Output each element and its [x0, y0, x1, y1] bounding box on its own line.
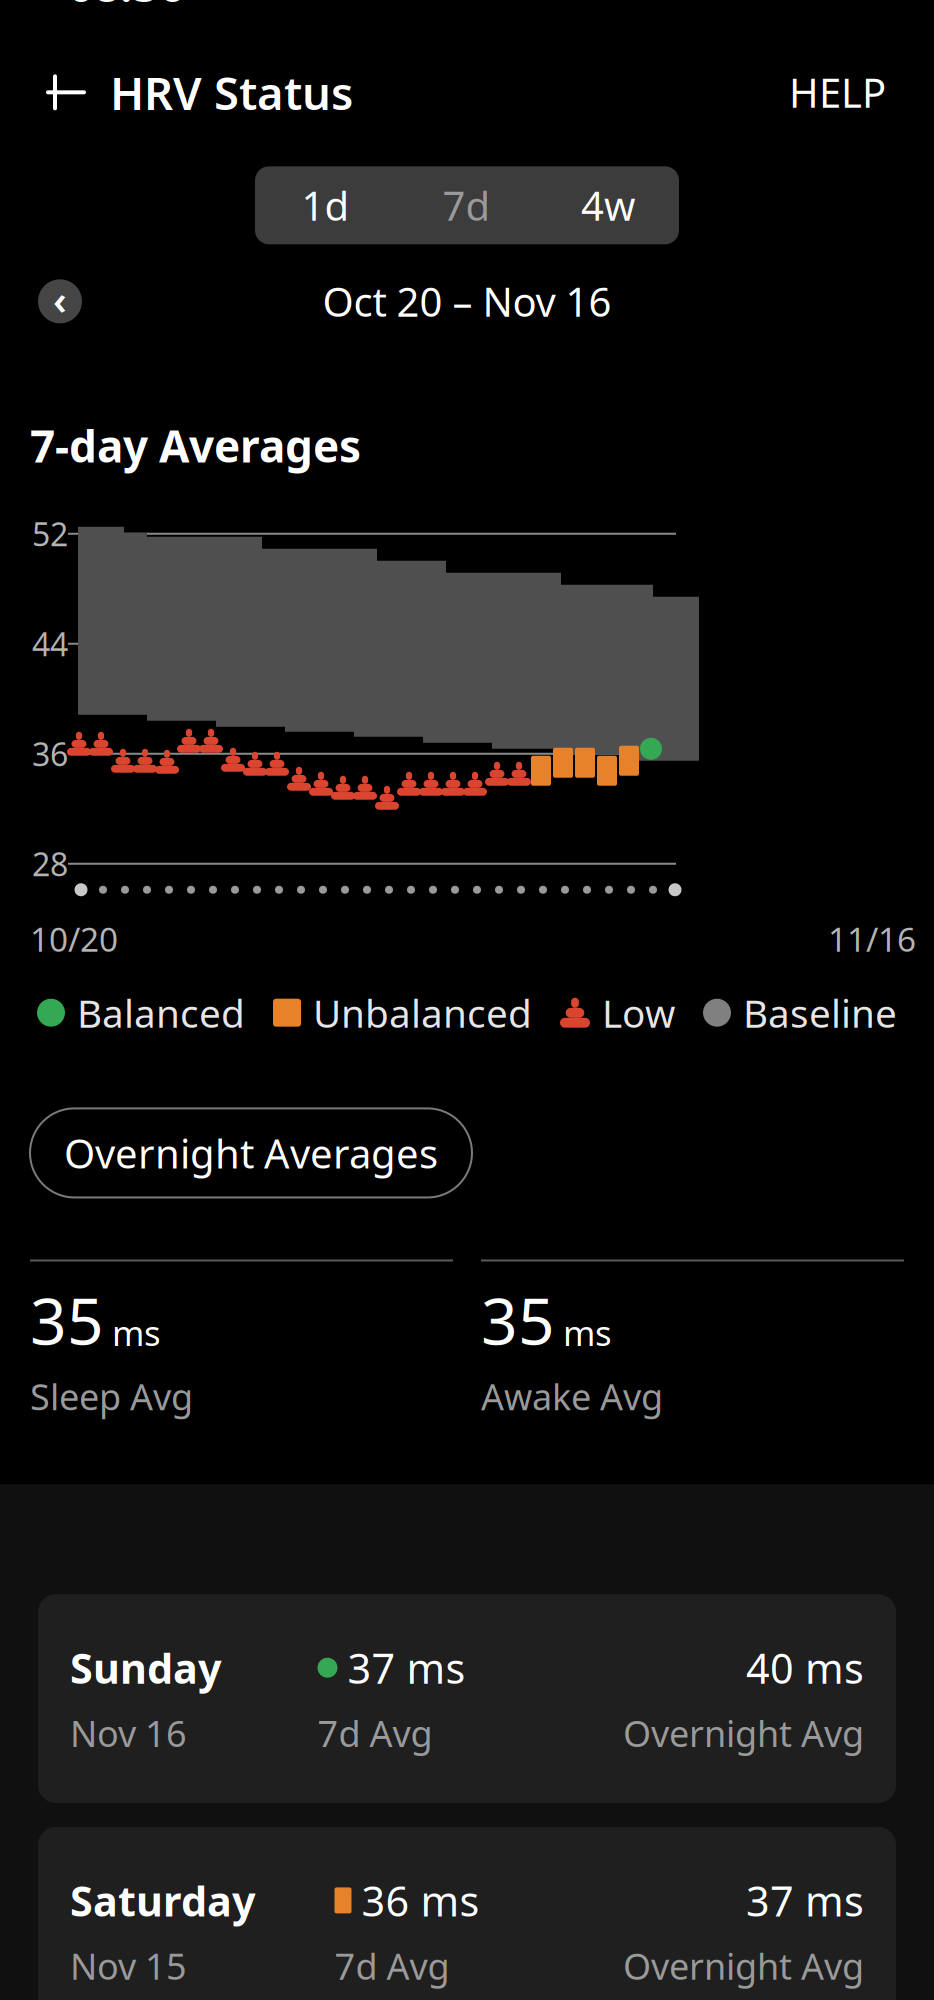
staticText: HELP — [789, 66, 886, 119]
staticText: 7-day Averages — [30, 416, 361, 475]
staticText: 44 — [32, 622, 68, 665]
staticText: HRV Status — [110, 62, 353, 122]
staticText: Baseline — [743, 987, 897, 1038]
staticText: 37 ms — [746, 1873, 864, 1928]
staticText: 35 — [30, 1277, 104, 1362]
button[interactable]: Overnight Averages — [30, 1108, 472, 1197]
staticText: 36 — [32, 732, 68, 775]
staticText: ms — [112, 1309, 161, 1355]
button[interactable]: 1d — [255, 166, 396, 244]
staticText: Oct 20 – Nov 16 — [322, 275, 611, 328]
staticText: Awake Avg — [481, 1372, 663, 1420]
staticText: Balanced — [77, 987, 245, 1038]
staticText: Nov 16 — [70, 1709, 187, 1757]
staticText: 40 ms — [746, 1640, 864, 1695]
staticText: 52 — [32, 512, 68, 555]
staticText: 7d Avg — [334, 1942, 449, 1990]
staticText: Unbalanced — [313, 987, 532, 1038]
staticText: Nov 15 — [70, 1942, 187, 1990]
button[interactable]: 4w — [537, 166, 679, 244]
staticText: 35 — [481, 1277, 555, 1362]
staticText: 36 ms — [361, 1873, 479, 1928]
staticText: Low — [602, 987, 675, 1038]
button[interactable]: Sunday — [38, 1594, 896, 1803]
staticText: 11/16 — [828, 917, 916, 961]
staticText: Saturday — [70, 1873, 256, 1928]
staticText: Overnight Avg — [623, 1709, 864, 1757]
button[interactable]: Saturday — [38, 1827, 896, 2000]
staticText: Sleep Avg — [30, 1372, 193, 1420]
staticText: ms — [563, 1309, 612, 1355]
staticText: Overnight Avg — [623, 1942, 864, 1990]
staticText: 4w — [581, 179, 635, 232]
staticText: 7d — [442, 179, 490, 232]
staticText: 28 — [32, 842, 68, 885]
button[interactable]: Previous period — [34, 275, 86, 327]
button[interactable]: 7d — [396, 166, 537, 244]
staticText: 37 ms — [347, 1640, 465, 1695]
staticText: 7d Avg — [317, 1709, 432, 1757]
staticText: 10/20 — [30, 917, 118, 961]
staticText: ‹ — [53, 273, 67, 326]
staticText: Sunday — [70, 1640, 222, 1695]
staticText: 08:56 — [68, 0, 185, 14]
staticText: 1d — [301, 179, 349, 232]
staticText: Overnight Averages — [64, 1126, 438, 1179]
button[interactable]: Back — [30, 56, 102, 128]
button[interactable]: HELP — [779, 52, 896, 133]
